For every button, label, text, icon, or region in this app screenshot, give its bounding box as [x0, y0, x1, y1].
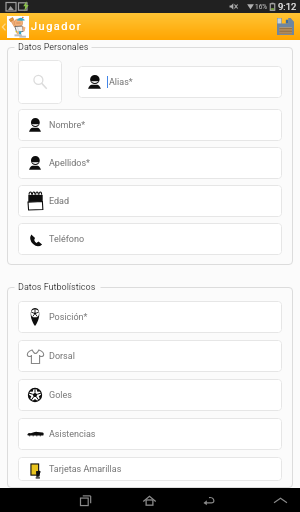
button[interactable]: Menú	[268, 488, 292, 512]
button[interactable]: Posición*	[18, 301, 282, 333]
button[interactable]: Guardar	[270, 13, 300, 40]
staticText: Goles	[49, 390, 72, 401]
button[interactable]: Atrás	[0, 13, 29, 40]
button[interactable]: Nombre*	[18, 109, 282, 141]
staticText: Nombre*	[49, 120, 86, 131]
staticText: Datos Personales	[18, 42, 89, 53]
button[interactable]: Teléfono	[18, 223, 282, 255]
button[interactable]: Recientes	[73, 488, 97, 512]
button[interactable]: Inicio	[137, 488, 161, 512]
button[interactable]: Buscar	[18, 60, 62, 104]
button[interactable]: Tarjetas Amarillas	[18, 457, 282, 481]
staticText: Dorsal	[49, 351, 75, 362]
button[interactable]: Atrás	[197, 488, 221, 512]
staticText: Datos Futbolísticos	[18, 282, 96, 293]
staticText: Jugador	[31, 20, 82, 33]
staticText: 16%	[255, 3, 268, 11]
button[interactable]: Apellidos*	[18, 147, 282, 179]
button[interactable]: Goles	[18, 379, 282, 411]
staticText: Teléfono	[49, 234, 85, 245]
staticText: Posición*	[49, 312, 88, 323]
button[interactable]: Dorsal	[18, 340, 282, 372]
staticText: 9:12	[278, 1, 297, 12]
staticText: Alias*	[109, 77, 133, 88]
button[interactable]: Asistencias	[18, 418, 282, 450]
staticText: Apellidos*	[49, 158, 90, 169]
staticText: Tarjetas Amarillas	[49, 464, 122, 475]
staticText: Asistencias	[49, 429, 96, 440]
button[interactable]: Edad	[18, 185, 282, 217]
other: Atrás	[0, 20, 7, 34]
staticText: Edad	[49, 196, 70, 207]
button[interactable]: Alias*	[78, 66, 282, 98]
